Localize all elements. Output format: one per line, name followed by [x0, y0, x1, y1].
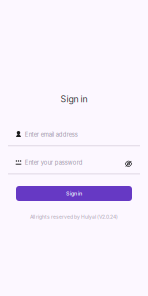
button[interactable]: Show password	[123, 158, 134, 169]
staticText: Enter email address	[25, 131, 78, 138]
staticText: All rights reserved by Hulyal (V2.0.24)	[30, 214, 118, 220]
staticText: Sign in	[60, 94, 87, 104]
staticText: Enter your password	[25, 159, 83, 166]
staticText: Sign in	[66, 190, 82, 197]
button[interactable]: Sign in	[16, 186, 132, 201]
